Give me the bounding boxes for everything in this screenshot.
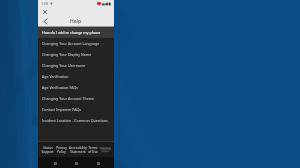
- button[interactable]: Status: [41, 146, 54, 154]
- staticText: Policy: [57, 150, 66, 154]
- staticText: Age Verification FAQs: [42, 85, 78, 90]
- button[interactable]: Incident Location - Common Questions: [38, 115, 114, 126]
- button[interactable]: How do I add or change my phone number?: [38, 27, 114, 38]
- button[interactable]: Back: [41, 17, 49, 25]
- staticText: Statement: [70, 150, 86, 154]
- staticText: Changing Your Display Name: [42, 52, 92, 57]
- button[interactable]: Age Verification FAQs: [38, 82, 114, 93]
- staticText: Support: [41, 150, 54, 154]
- staticText: How do I add or change my phone number?: [42, 30, 110, 35]
- button[interactable]: Terms: [88, 146, 98, 154]
- button[interactable]: Changing Your Account Language: [38, 38, 114, 49]
- button[interactable]: Back: [50, 158, 60, 168]
- button[interactable]: Changing Your Display Name: [38, 49, 114, 60]
- staticText: Contact Imposter FAQs: [42, 107, 81, 112]
- staticText: Status: [43, 146, 53, 150]
- staticText: Privacy: [56, 146, 67, 150]
- staticText: Help: [70, 18, 82, 25]
- staticText: 1:08: [41, 1, 48, 6]
- button[interactable]: Close: [41, 8, 49, 16]
- button[interactable]: Privacy: [56, 146, 67, 154]
- button[interactable]: Accessibility: [69, 146, 87, 154]
- button[interactable]: Home: [71, 158, 81, 168]
- staticText: Age Verification: [42, 74, 69, 79]
- button[interactable]: Recents: [93, 158, 103, 168]
- button[interactable]: Age Verification: [38, 71, 114, 82]
- staticText: Changing Your Account Theme: [42, 96, 95, 101]
- staticText: Changing Your Account Language: [42, 41, 100, 46]
- staticText: of Use: [88, 150, 98, 154]
- staticText: Accessibility: [69, 146, 87, 150]
- button[interactable]: Contact Imposter FAQs: [38, 104, 114, 115]
- button[interactable]: Changing Your Username: [38, 60, 114, 71]
- staticText: Terms: [88, 146, 98, 150]
- button[interactable]: Logo: [100, 146, 111, 154]
- button[interactable]: Changing Your Account Theme: [38, 93, 114, 104]
- staticText: Incident Location - Common Questions: [42, 118, 108, 123]
- staticText: Changing Your Username: [42, 63, 86, 68]
